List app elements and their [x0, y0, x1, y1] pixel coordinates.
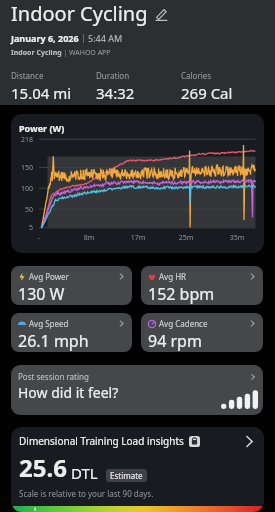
- button[interactable]: Power (W): [11, 114, 264, 253]
- button[interactable]: Avg Cadence: [141, 313, 263, 352]
- staticText: Avg Power: [29, 271, 69, 282]
- staticText: 5:44 AM: [88, 32, 123, 44]
- button[interactable]: Post session rating: [11, 365, 263, 415]
- staticText: DTL: [71, 463, 98, 483]
- staticText: Calories: [181, 70, 212, 81]
- staticText: -: [28, 233, 50, 243]
- staticText: 5: [11, 223, 33, 233]
- button[interactable]: Avg Power: [11, 266, 132, 305]
- staticText: 15.04 mi: [11, 83, 72, 103]
- staticText: Avg Cadence: [159, 318, 208, 329]
- button[interactable]: Avg Speed: [11, 313, 132, 352]
- staticText: Indoor Cycling: [11, 0, 148, 27]
- staticText: 8m: [78, 233, 100, 243]
- staticText: Distance: [11, 70, 44, 81]
- button[interactable]: Dimensional Training Load insights: [11, 427, 264, 512]
- staticText: Scale is relative to your last 90 days.: [19, 488, 154, 499]
- staticText: 269 Cal: [181, 83, 233, 103]
- staticText: 50: [11, 205, 33, 215]
- other: Open insights: [243, 435, 256, 448]
- staticText: Estimate: [110, 470, 143, 481]
- staticText: 130 W: [18, 283, 65, 305]
- staticText: 34:32: [96, 83, 135, 103]
- staticText: How did it feel?: [18, 383, 119, 402]
- staticText: Power (W): [19, 122, 65, 134]
- staticText: 26.1 mph: [18, 330, 89, 352]
- staticText: Avg Speed: [29, 318, 69, 329]
- staticText: Indoor Cycling: [11, 48, 62, 58]
- staticText: Avg HR: [159, 271, 187, 282]
- staticText: 100: [11, 184, 33, 194]
- staticText: 150: [11, 163, 33, 173]
- staticText: 17m: [127, 233, 149, 243]
- button[interactable]: Avg HR: [141, 266, 263, 305]
- staticText: Post session rating: [18, 371, 89, 382]
- staticText: 35m: [226, 233, 248, 243]
- staticText: 218: [11, 135, 33, 145]
- staticText: Duration: [96, 70, 130, 81]
- button[interactable]: Edit: [154, 7, 168, 21]
- staticText: 152 bpm: [148, 283, 215, 305]
- staticText: WAHOO APP: [69, 48, 111, 58]
- staticText: 25m: [175, 233, 197, 243]
- staticText: January 6, 2026: [11, 32, 79, 44]
- staticText: 25.6: [19, 451, 67, 484]
- staticText: Dimensional Training Load insights: [19, 434, 184, 448]
- staticText: 94 rpm: [148, 330, 202, 352]
